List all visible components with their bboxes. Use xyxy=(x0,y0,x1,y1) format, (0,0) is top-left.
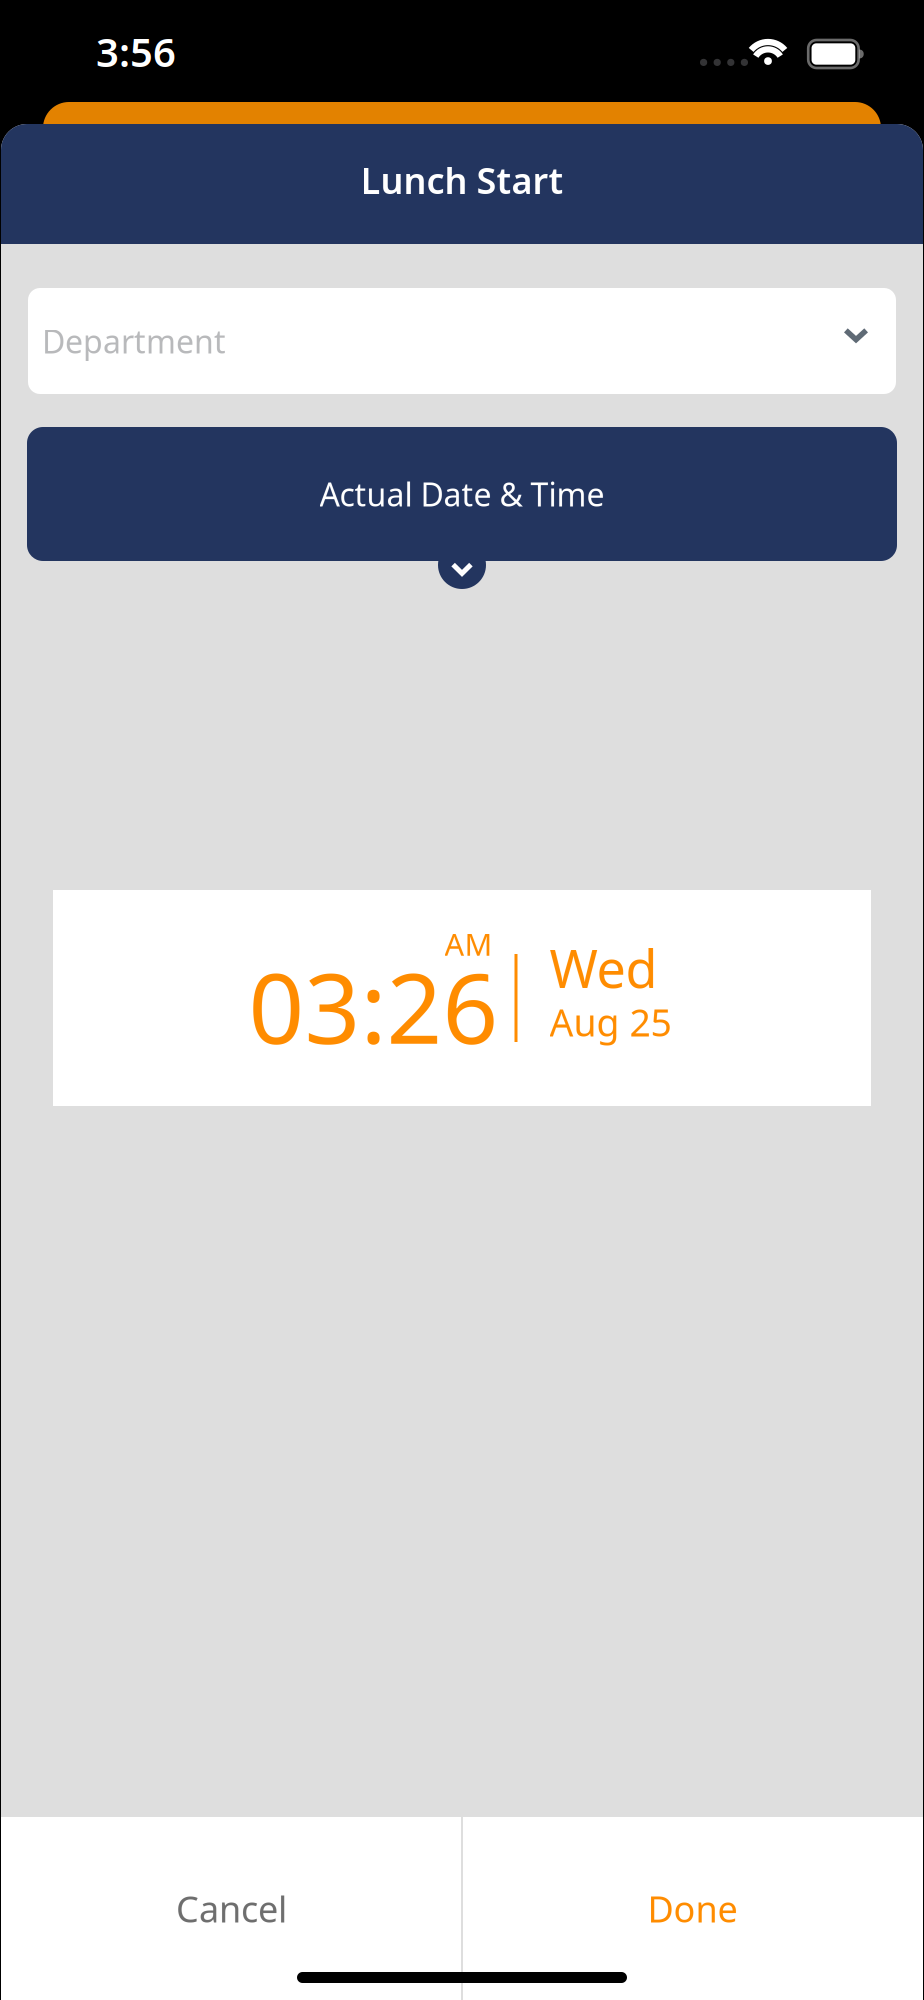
staticText: 03:26 xyxy=(248,941,498,1071)
staticText: Aug 25 xyxy=(549,997,671,1047)
staticText: Lunch Start xyxy=(360,156,563,204)
staticText: Wed xyxy=(549,933,657,1002)
staticText: 3:56 xyxy=(96,25,176,78)
button[interactable]: Done xyxy=(462,1817,923,2000)
button[interactable]: Cancel xyxy=(1,1817,462,2000)
button[interactable]: Department xyxy=(28,288,896,394)
staticText: Done xyxy=(647,1885,737,1932)
staticText: Department xyxy=(42,320,226,362)
staticText: Cancel xyxy=(176,1885,287,1932)
staticText: Actual Date & Time xyxy=(319,473,604,515)
staticText: AM xyxy=(444,923,492,964)
button[interactable]: Actual Date & Time xyxy=(27,427,897,589)
